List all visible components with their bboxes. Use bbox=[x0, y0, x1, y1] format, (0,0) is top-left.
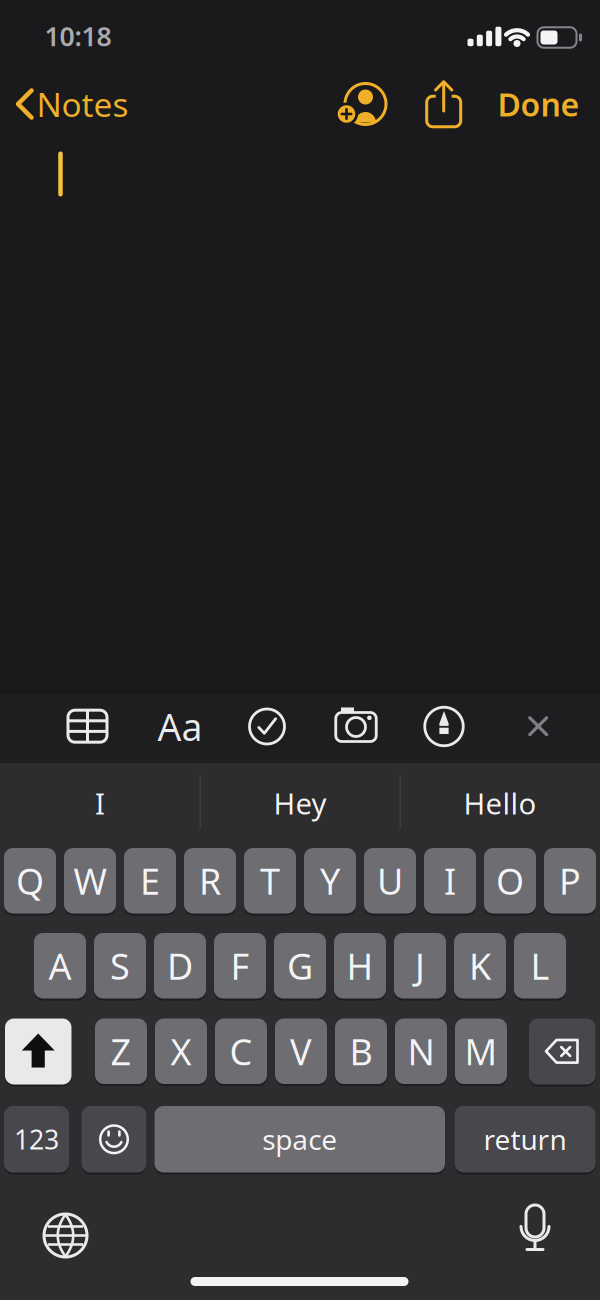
staticText: Hello bbox=[463, 783, 536, 822]
staticText: R bbox=[199, 857, 221, 905]
button[interactable]: H bbox=[334, 933, 386, 998]
staticText: G bbox=[287, 942, 313, 990]
staticText: return bbox=[483, 1121, 566, 1158]
button[interactable] bbox=[37, 1207, 93, 1263]
staticText: I bbox=[95, 783, 105, 822]
staticText: T bbox=[260, 857, 280, 905]
button[interactable] bbox=[529, 1018, 595, 1084]
staticText: Done bbox=[497, 83, 579, 125]
button[interactable]: U bbox=[364, 848, 416, 913]
button[interactable] bbox=[418, 77, 470, 129]
button[interactable]: Z bbox=[95, 1018, 147, 1084]
button[interactable]: 123 bbox=[4, 1106, 69, 1172]
button[interactable]: L bbox=[514, 933, 566, 998]
button[interactable] bbox=[12, 82, 116, 126]
staticText: Q bbox=[16, 857, 44, 905]
button[interactable]: space bbox=[154, 1106, 445, 1172]
staticText: Aa bbox=[157, 702, 202, 751]
staticText: Notes bbox=[36, 82, 128, 126]
staticText: B bbox=[349, 1027, 372, 1075]
button[interactable] bbox=[81, 1106, 146, 1172]
button[interactable]: Aa bbox=[152, 700, 208, 752]
staticText: H bbox=[346, 942, 373, 990]
button[interactable]: X bbox=[155, 1018, 207, 1084]
staticText: Z bbox=[110, 1027, 131, 1075]
button[interactable]: E bbox=[124, 848, 176, 913]
staticText: C bbox=[229, 1027, 252, 1075]
staticText: U bbox=[377, 857, 403, 905]
staticText: I bbox=[444, 857, 456, 905]
staticText: space bbox=[262, 1121, 337, 1158]
staticText: Hey bbox=[273, 783, 326, 822]
staticText: D bbox=[167, 942, 193, 990]
button[interactable] bbox=[418, 700, 470, 752]
staticText: M bbox=[464, 1027, 497, 1075]
button[interactable]: W bbox=[64, 848, 116, 913]
button[interactable]: R bbox=[184, 848, 236, 913]
staticText: 10:18 bbox=[44, 18, 111, 54]
button[interactable] bbox=[333, 80, 391, 128]
button[interactable]: J bbox=[394, 933, 446, 998]
button[interactable]: G bbox=[274, 933, 326, 998]
button[interactable] bbox=[328, 700, 384, 752]
button[interactable]: I bbox=[3, 767, 197, 839]
button[interactable]: A bbox=[34, 933, 86, 998]
button[interactable]: Hey bbox=[203, 767, 397, 839]
button[interactable] bbox=[507, 1200, 563, 1256]
staticText: K bbox=[469, 942, 491, 990]
button[interactable] bbox=[241, 700, 293, 752]
staticText: X bbox=[170, 1027, 191, 1075]
button[interactable]: C bbox=[215, 1018, 267, 1084]
button[interactable]: D bbox=[154, 933, 206, 998]
button[interactable] bbox=[59, 700, 115, 752]
button[interactable] bbox=[5, 1018, 71, 1084]
button[interactable]: V bbox=[275, 1018, 327, 1084]
button[interactable]: T bbox=[244, 848, 296, 913]
staticText: E bbox=[140, 857, 160, 905]
button[interactable]: O bbox=[484, 848, 536, 913]
staticText: Y bbox=[320, 857, 340, 905]
button[interactable]: Done bbox=[478, 82, 598, 126]
button[interactable]: K bbox=[454, 933, 506, 998]
button[interactable]: I bbox=[424, 848, 476, 913]
button[interactable]: Y bbox=[304, 848, 356, 913]
button[interactable]: M bbox=[455, 1018, 507, 1084]
staticText: J bbox=[415, 942, 425, 990]
button[interactable]: P bbox=[544, 848, 596, 913]
staticText: F bbox=[230, 942, 249, 990]
button[interactable]: F bbox=[214, 933, 266, 998]
button[interactable]: S bbox=[94, 933, 146, 998]
staticText: W bbox=[73, 857, 106, 905]
staticText: N bbox=[407, 1027, 434, 1075]
staticText: S bbox=[110, 942, 130, 990]
button[interactable]: return bbox=[454, 1106, 595, 1172]
staticText: V bbox=[290, 1027, 312, 1075]
button[interactable]: B bbox=[335, 1018, 387, 1084]
button[interactable]: Hello bbox=[403, 767, 597, 839]
staticText: 123 bbox=[14, 1121, 59, 1157]
button[interactable]: N bbox=[395, 1018, 447, 1084]
staticText: L bbox=[530, 942, 549, 990]
staticText: P bbox=[559, 857, 581, 905]
staticText: O bbox=[496, 857, 524, 905]
staticText: A bbox=[48, 942, 71, 990]
button[interactable]: Q bbox=[4, 848, 56, 913]
button[interactable] bbox=[512, 700, 564, 752]
